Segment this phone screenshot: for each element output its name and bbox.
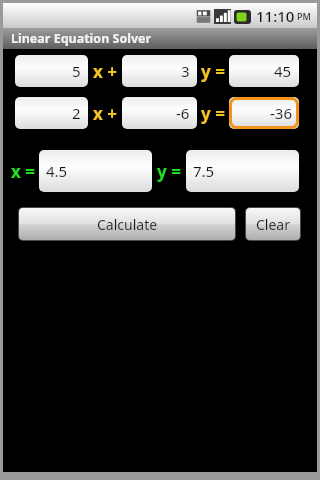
button[interactable]: 7.5: [186, 150, 299, 192]
staticText: -6: [176, 103, 190, 123]
button[interactable]: 2: [15, 97, 88, 129]
staticText: 45: [274, 61, 292, 81]
staticText: 5: [72, 61, 81, 81]
staticText: y =: [201, 60, 225, 83]
staticText: 4.5: [46, 161, 68, 181]
staticText: x =: [11, 160, 35, 183]
staticText: x +: [93, 102, 117, 125]
button[interactable]: 4.5: [39, 150, 152, 192]
staticText: Calculate: [97, 215, 158, 234]
button[interactable]: Calculate: [19, 208, 235, 240]
staticText: 11:10: [256, 6, 295, 26]
staticText: 7.5: [193, 161, 215, 181]
staticText: PM: [297, 10, 311, 22]
staticText: x +: [93, 60, 117, 83]
staticText: y =: [201, 102, 225, 125]
staticText: Linear Equation Solver: [11, 30, 152, 47]
staticText: y =: [157, 160, 181, 183]
button[interactable]: 3: [122, 55, 197, 87]
button[interactable]: 45: [229, 55, 299, 87]
staticText: 3: [181, 61, 190, 81]
button[interactable]: Clear: [246, 208, 300, 240]
button[interactable]: -36: [229, 97, 299, 129]
staticText: 2: [72, 103, 81, 123]
staticText: Clear: [256, 215, 290, 234]
button[interactable]: 5: [15, 55, 88, 87]
button[interactable]: -6: [122, 97, 197, 129]
staticText: -36: [270, 103, 292, 123]
